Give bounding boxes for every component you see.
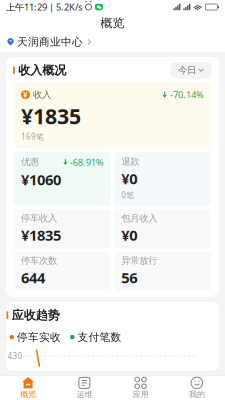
staticText: 应收趋势 (12, 308, 60, 322)
staticText: 停车收入 (21, 212, 57, 224)
staticText: 0笔 (121, 190, 134, 200)
staticText: 包月收入 (121, 212, 157, 224)
button[interactable]: 应用 (112, 376, 169, 400)
staticText: 今日 (178, 64, 196, 76)
staticText: 收入概况 (18, 63, 66, 78)
staticText: -70.14% (170, 88, 204, 101)
staticText: 收入 (33, 89, 51, 100)
staticText: ¥1835 (21, 225, 61, 245)
staticText: 优惠 (21, 156, 39, 168)
staticText: 停车实收 (17, 331, 61, 344)
staticText: 支付笔数 (77, 331, 121, 344)
staticText: 169笔 (21, 131, 44, 142)
staticText: 我的 (189, 389, 205, 399)
staticText: ¥1060 (21, 170, 61, 189)
staticText: 退款 (121, 156, 139, 167)
staticText: 天润商业中心 (17, 35, 83, 48)
staticText: ¥0 (121, 169, 137, 188)
staticText: 56 (121, 268, 137, 287)
button[interactable]: 运维 (56, 376, 112, 400)
staticText: 概览 (100, 16, 124, 30)
staticText: 停车次数 (21, 255, 57, 266)
staticText: 概览 (20, 389, 36, 399)
staticText: 应用 (133, 389, 149, 399)
staticText: 异常放行 (121, 255, 157, 266)
staticText: ¥1835 (21, 102, 81, 130)
staticText: 430 (7, 351, 22, 361)
button[interactable]: 概览 (0, 376, 56, 400)
staticText: 运维 (76, 389, 92, 399)
button[interactable]: 我的 (169, 376, 225, 400)
button[interactable]: 天润商业中心 (0, 32, 225, 52)
staticText: 644 (21, 268, 45, 287)
staticText: 上午11:29 | 5.2K/s (6, 1, 82, 13)
staticText: -68.91% (70, 156, 104, 168)
button[interactable]: 今日 (170, 62, 212, 78)
staticText: ¥0 (121, 225, 137, 245)
staticText: ¥ (23, 89, 28, 100)
